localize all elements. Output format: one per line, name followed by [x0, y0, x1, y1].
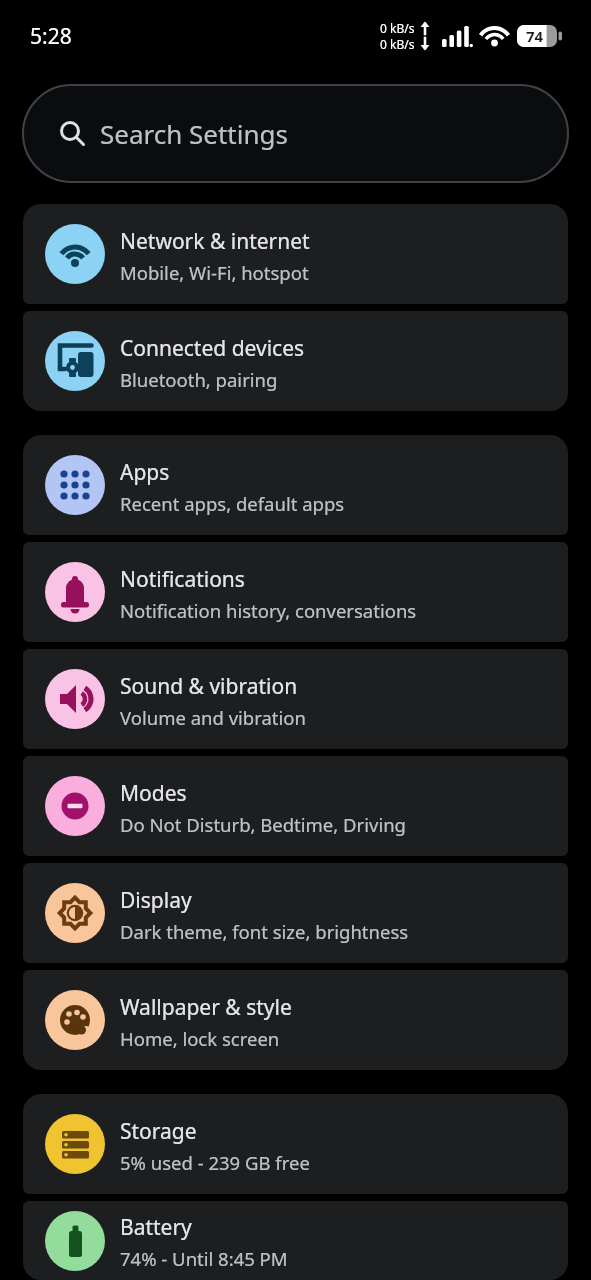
button[interactable]: Notifications: [23, 542, 568, 642]
staticText: 74: [526, 26, 544, 46]
staticText: Sound & vibration: [120, 672, 298, 701]
staticText: Battery: [120, 1213, 192, 1242]
button[interactable]: Modes: [23, 756, 568, 856]
staticText: 0 kB/s: [380, 36, 415, 52]
staticText: Connected devices: [120, 334, 305, 363]
staticText: Wallpaper & style: [120, 993, 292, 1022]
staticText: Notification history, conversations: [120, 598, 417, 623]
button[interactable]: Search Settings: [22, 84, 569, 183]
staticText: Notifications: [120, 565, 245, 594]
button[interactable]: Connected devices: [23, 311, 568, 411]
button[interactable]: Network & internet: [23, 204, 568, 304]
staticText: 74% - Until 8:45 PM: [120, 1246, 288, 1271]
staticText: Volume and vibration: [120, 705, 306, 730]
staticText: Mobile, Wi-Fi, hotspot: [120, 260, 309, 285]
staticText: Modes: [120, 779, 187, 808]
staticText: Home, lock screen: [120, 1026, 280, 1051]
staticText: Storage: [120, 1117, 197, 1146]
staticText: Search Settings: [100, 116, 288, 151]
staticText: Network & internet: [120, 227, 310, 256]
staticText: Dark theme, font size, brightness: [120, 919, 409, 944]
staticText: 5% used - 239 GB free: [120, 1150, 310, 1175]
staticText: 0 kB/s: [380, 20, 415, 36]
button[interactable]: Battery: [23, 1201, 568, 1280]
staticText: 5:28: [30, 22, 72, 51]
button[interactable]: Sound & vibration: [23, 649, 568, 749]
button[interactable]: Apps: [23, 435, 568, 535]
button[interactable]: Storage: [23, 1094, 568, 1194]
staticText: Display: [120, 886, 192, 915]
button[interactable]: Display: [23, 863, 568, 963]
staticText: Recent apps, default apps: [120, 491, 345, 516]
staticText: Bluetooth, pairing: [120, 367, 278, 392]
staticText: Do Not Disturb, Bedtime, Driving: [120, 812, 406, 837]
button[interactable]: Wallpaper & style: [23, 970, 568, 1070]
staticText: Apps: [120, 458, 170, 487]
